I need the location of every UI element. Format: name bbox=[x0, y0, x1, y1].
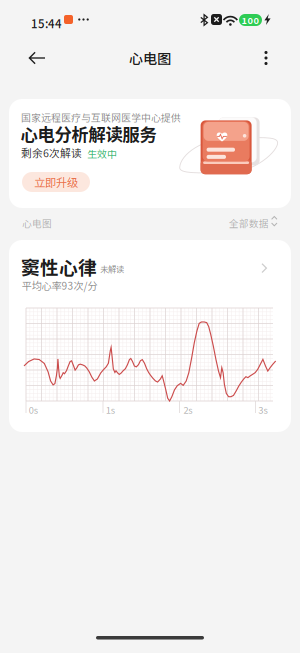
button[interactable]: 全部数据 bbox=[229, 215, 279, 229]
staticText: 剩余6次解读 bbox=[21, 145, 82, 160]
staticText: 平均心率93次/分 bbox=[21, 278, 97, 293]
staticText: 全部数据 bbox=[229, 216, 269, 230]
staticText: 心电分析解读服务 bbox=[20, 121, 156, 146]
staticText: 窦性心律 bbox=[21, 253, 97, 280]
staticText: 2s bbox=[183, 403, 192, 416]
staticText: 100 bbox=[241, 13, 259, 27]
staticText: 立即升级 bbox=[34, 174, 78, 190]
button[interactable]: 窦性心律 bbox=[9, 240, 291, 432]
staticText: 生效中 bbox=[87, 146, 117, 161]
button[interactable]: 立即升级 bbox=[22, 172, 90, 192]
button[interactable]: More options bbox=[245, 37, 287, 79]
button[interactable]: Back bbox=[16, 37, 58, 79]
staticText: 0s bbox=[29, 403, 38, 416]
staticText: 1s bbox=[106, 403, 115, 416]
staticText: 心电图 bbox=[22, 216, 52, 230]
staticText: 心电图 bbox=[129, 48, 171, 68]
staticText: 国家远程医疗与互联网医学中心提供 bbox=[21, 110, 181, 124]
staticText: 3s bbox=[258, 403, 267, 416]
staticText: 未解读 bbox=[100, 263, 124, 275]
staticText: 15:44 bbox=[31, 15, 62, 32]
